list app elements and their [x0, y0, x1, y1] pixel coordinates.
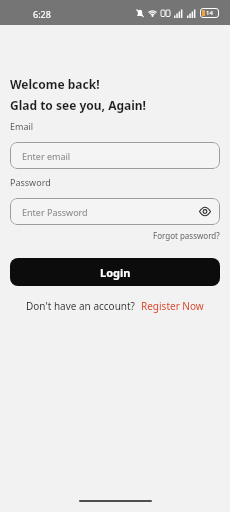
staticText: Don't have an account? [26, 299, 135, 313]
staticText: Glad to see you, Again! [10, 97, 146, 113]
staticText: Login [100, 265, 131, 280]
staticText: Enter email [22, 150, 71, 162]
staticText: 14 [206, 9, 213, 17]
button[interactable]: Enter Password [10, 198, 220, 225]
staticText: Welcome back! [10, 76, 100, 92]
button[interactable]: Forgot password? [153, 230, 220, 241]
button[interactable]: Enter email [10, 142, 220, 169]
staticText: Email [10, 120, 34, 132]
button[interactable]: Login [10, 258, 220, 286]
staticText: Password [10, 176, 51, 188]
button[interactable] [199, 207, 211, 216]
staticText: Enter Password [22, 206, 88, 218]
staticText: 6:28 [33, 8, 51, 20]
button[interactable]: Register Now [141, 299, 204, 313]
